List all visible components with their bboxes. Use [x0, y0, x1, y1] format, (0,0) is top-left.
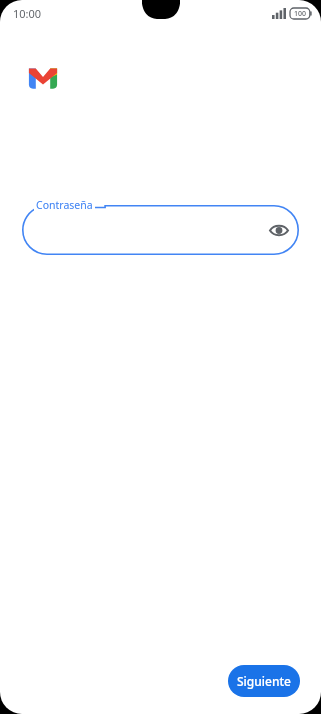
button[interactable]: Mostrar contraseña — [22, 205, 299, 255]
staticText: Siguiente — [237, 673, 291, 689]
button[interactable]: Mostrar contraseña — [266, 217, 292, 243]
staticText: Contraseña — [36, 198, 93, 212]
staticText: 10:00 — [13, 6, 42, 21]
staticText: 100 — [294, 9, 307, 19]
button[interactable]: Siguiente — [228, 665, 300, 697]
